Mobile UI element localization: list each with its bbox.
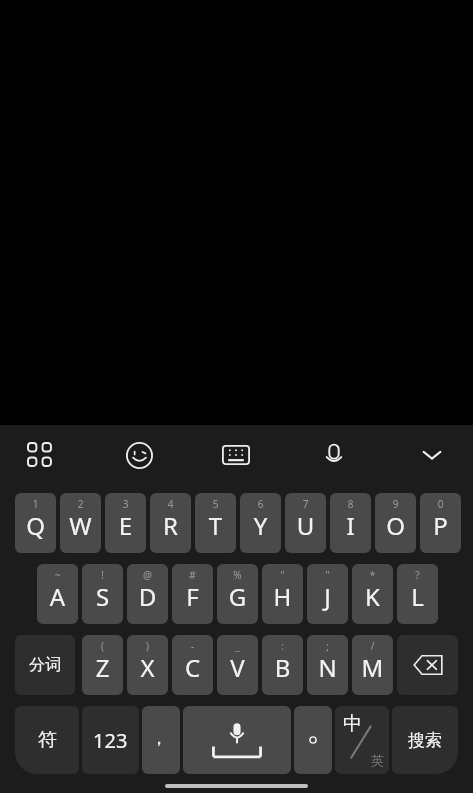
- button[interactable]: 分词: [15, 635, 75, 695]
- button[interactable]: 1: [15, 493, 56, 553]
- button[interactable]: @: [127, 564, 168, 624]
- staticText: 2: [60, 497, 101, 511]
- staticText: #: [172, 568, 213, 582]
- staticText: 分词: [29, 655, 61, 675]
- staticText: 9: [375, 497, 416, 511]
- staticText: ~: [37, 568, 78, 582]
- staticText: 4: [150, 497, 191, 511]
- button[interactable]: ;: [307, 635, 348, 695]
- staticText: 6: [240, 497, 281, 511]
- button[interactable]: %: [217, 564, 258, 624]
- staticText: B: [262, 651, 303, 684]
- button[interactable]: *: [352, 564, 393, 624]
- button[interactable]: 123: [82, 706, 139, 774]
- button[interactable]: Voice input: [310, 431, 358, 479]
- staticText: @: [127, 568, 168, 582]
- staticText: 符: [38, 728, 57, 752]
- staticText: 英: [371, 752, 384, 768]
- button[interactable]: [294, 706, 332, 774]
- staticText: 8: [330, 497, 371, 511]
- staticText: D: [127, 580, 168, 613]
- staticText: V: [217, 651, 258, 684]
- button[interactable]: -: [172, 635, 213, 695]
- staticText: Z: [82, 651, 123, 684]
- staticText: ": [262, 568, 303, 582]
- staticText: U: [285, 509, 326, 542]
- staticText: ;: [307, 639, 348, 653]
- staticText: W: [60, 509, 101, 542]
- button[interactable]: 0: [420, 493, 461, 553]
- button[interactable]: 7: [285, 493, 326, 553]
- button[interactable]: 搜索: [392, 706, 458, 774]
- button[interactable]: Chinese English toggle: [335, 706, 389, 774]
- staticText: Y: [240, 509, 281, 542]
- button[interactable]: 6: [240, 493, 281, 553]
- button[interactable]: Backspace: [397, 635, 458, 695]
- button[interactable]: :: [262, 635, 303, 695]
- button[interactable]: /: [352, 635, 393, 695]
- staticText: ，: [150, 727, 168, 750]
- staticText: 1: [15, 497, 56, 511]
- button[interactable]: #: [172, 564, 213, 624]
- staticText: S: [82, 580, 123, 613]
- staticText: H: [262, 580, 303, 613]
- staticText: ): [127, 639, 168, 653]
- staticText: (: [82, 639, 123, 653]
- button[interactable]: Keyboard layout: [212, 431, 260, 479]
- staticText: ?: [397, 568, 438, 582]
- staticText: C: [172, 651, 213, 684]
- staticText: K: [352, 580, 393, 613]
- staticText: _: [217, 639, 258, 653]
- staticText: *: [352, 568, 393, 582]
- staticText: X: [127, 651, 168, 684]
- staticText: %: [217, 568, 258, 582]
- staticText: 123: [93, 727, 128, 754]
- staticText: 0: [420, 497, 461, 511]
- button[interactable]: ，: [142, 706, 180, 774]
- staticText: :: [262, 639, 303, 653]
- staticText: -: [172, 639, 213, 653]
- button[interactable]: 9: [375, 493, 416, 553]
- button[interactable]: 4: [150, 493, 191, 553]
- staticText: 搜索: [408, 730, 442, 751]
- staticText: 中: [343, 712, 362, 736]
- button[interactable]: _: [217, 635, 258, 695]
- staticText: A: [37, 580, 78, 613]
- button[interactable]: 2: [60, 493, 101, 553]
- staticText: /: [352, 639, 393, 653]
- button[interactable]: ": [307, 564, 348, 624]
- button[interactable]: ~: [37, 564, 78, 624]
- staticText: R: [150, 509, 191, 542]
- staticText: T: [195, 509, 236, 542]
- button[interactable]: ?: [397, 564, 438, 624]
- staticText: N: [307, 651, 348, 684]
- staticText: G: [217, 580, 258, 613]
- staticText: M: [352, 651, 393, 684]
- staticText: 5: [195, 497, 236, 511]
- staticText: 7: [285, 497, 326, 511]
- button[interactable]: 5: [195, 493, 236, 553]
- button[interactable]: Space, voice input: [183, 706, 291, 774]
- staticText: P: [420, 509, 461, 542]
- button[interactable]: 8: [330, 493, 371, 553]
- button[interactable]: (: [82, 635, 123, 695]
- button[interactable]: Keyboard modes: [16, 431, 64, 479]
- staticText: 3: [105, 497, 146, 511]
- staticText: I: [330, 509, 371, 542]
- staticText: O: [375, 509, 416, 542]
- button[interactable]: 符: [15, 706, 79, 774]
- button[interactable]: Hide keyboard: [408, 431, 456, 479]
- staticText: F: [172, 580, 213, 613]
- staticText: !: [82, 568, 123, 582]
- staticText: J: [307, 580, 348, 613]
- button[interactable]: ): [127, 635, 168, 695]
- staticText: E: [105, 509, 146, 542]
- staticText: L: [397, 580, 438, 613]
- button[interactable]: 3: [105, 493, 146, 553]
- button[interactable]: Emoji: [115, 431, 163, 479]
- button[interactable]: ": [262, 564, 303, 624]
- button[interactable]: !: [82, 564, 123, 624]
- staticText: ": [307, 568, 348, 582]
- staticText: Q: [15, 509, 56, 542]
